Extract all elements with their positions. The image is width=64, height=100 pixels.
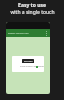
button[interactable]: BATTERY bbox=[22, 59, 34, 63]
staticText: Battery Percent Info bbox=[8, 32, 42, 35]
button[interactable]: BATTERY bbox=[12, 56, 44, 72]
staticText: Show battery percentage bbox=[20, 65, 44, 68]
staticText: BATTERY bbox=[24, 60, 33, 63]
button[interactable]: More options bbox=[42, 29, 50, 37]
staticText: with a single touch bbox=[10, 9, 55, 16]
staticText: Easy to use bbox=[18, 2, 46, 9]
